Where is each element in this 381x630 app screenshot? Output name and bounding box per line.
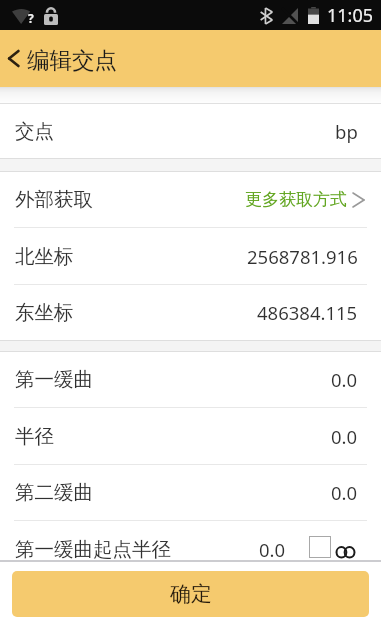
button[interactable]: 外部获取: [0, 172, 381, 228]
button[interactable]: 确定: [12, 571, 369, 617]
button[interactable]: 交点: [0, 104, 381, 158]
staticText: 编辑交点: [27, 46, 117, 74]
button[interactable]: 半径: [0, 408, 381, 465]
staticText: 0.0: [259, 537, 286, 559]
staticText: 11:05: [327, 3, 374, 28]
button[interactable]: 第一缓曲: [0, 352, 381, 408]
button[interactable]: Infinity: [309, 536, 331, 558]
button[interactable]: 东坐标: [0, 285, 381, 340]
staticText: 第二缓曲: [15, 480, 93, 505]
staticText: 外部获取: [15, 187, 93, 212]
staticText: 486384.115: [257, 300, 358, 325]
staticText: 0.0: [331, 480, 358, 505]
staticText: 半径: [15, 424, 54, 449]
staticText: ?: [28, 10, 34, 26]
staticText: 第一缓曲起点半径: [15, 537, 171, 559]
staticText: 0.0: [331, 367, 358, 392]
button[interactable]: 北坐标: [0, 228, 381, 285]
staticText: 0.0: [331, 424, 358, 449]
staticText: 第一缓曲: [15, 367, 93, 392]
button[interactable]: 第二缓曲: [0, 465, 381, 521]
button[interactable]: Back: [0, 30, 26, 87]
staticText: 确定: [170, 581, 212, 607]
staticText: 更多获取方式: [245, 189, 347, 210]
staticText: 北坐标: [15, 244, 74, 269]
staticText: 交点: [15, 119, 54, 144]
staticText: bp: [335, 119, 358, 144]
button[interactable]: 第一缓曲起点半径: [0, 521, 381, 559]
staticText: 2568781.916: [247, 244, 358, 269]
staticText: 东坐标: [15, 300, 74, 325]
